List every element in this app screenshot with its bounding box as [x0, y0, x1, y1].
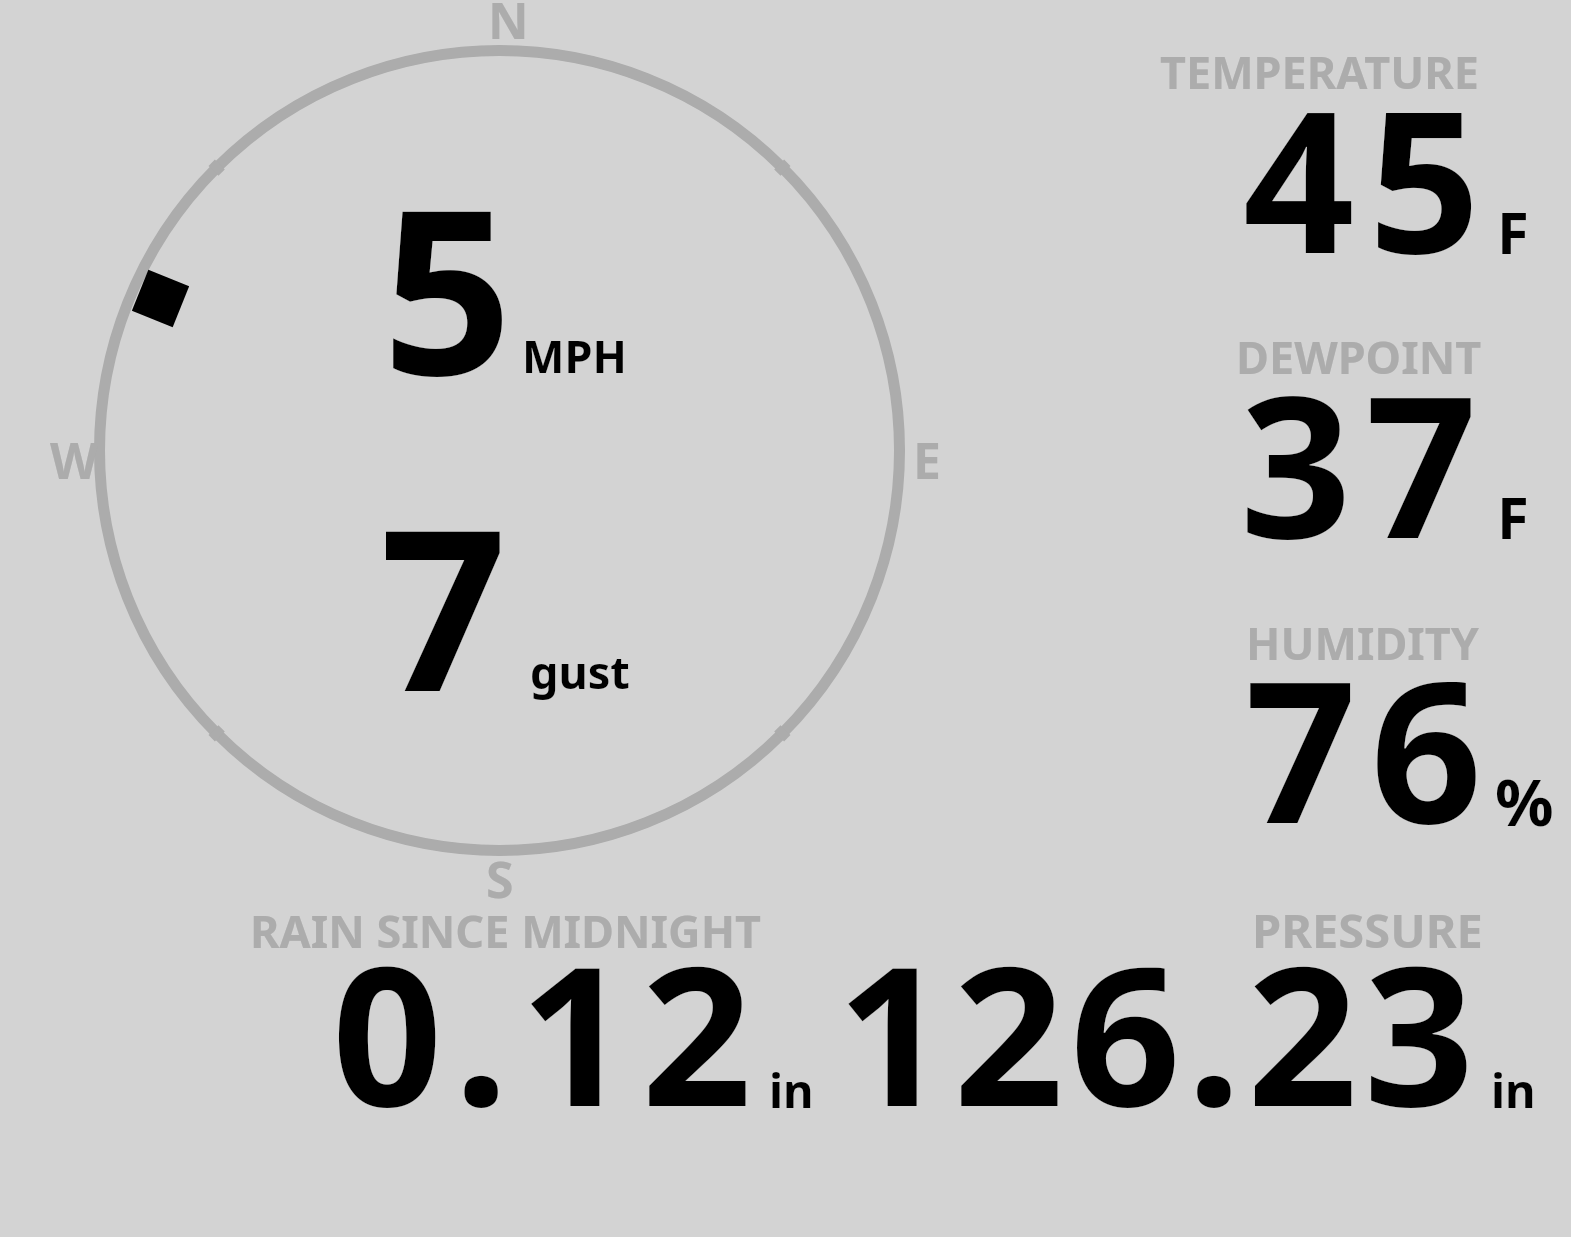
staticText: % — [1495, 757, 1554, 846]
staticText: MPH — [522, 325, 627, 386]
staticText: 0.12 — [332, 900, 764, 1163]
button[interactable]: Humidity 76 percent — [1150, 610, 1560, 840]
staticText: 126.23 — [837, 900, 1481, 1163]
staticText: 76 — [1245, 615, 1497, 881]
button[interactable]: Temperature 45 degrees Fahrenheit — [1150, 40, 1560, 270]
staticText: TEMPERATURE — [1160, 41, 1479, 102]
staticText: PRESSURE — [1252, 898, 1483, 962]
staticText: gust — [530, 641, 630, 702]
staticText: HUMIDITY — [1246, 612, 1479, 673]
staticText: E — [913, 426, 941, 494]
staticText: N — [488, 0, 529, 54]
staticText: RAIN SINCE MIDNIGHT — [250, 900, 762, 961]
staticText: 37 — [1240, 330, 1492, 596]
button[interactable]: Dewpoint 37 degrees Fahrenheit — [1150, 325, 1560, 555]
button[interactable]: Rain since midnight 0.12 inches — [240, 900, 820, 1130]
staticText: 5 — [382, 131, 513, 442]
button[interactable]: Pressure 126.23 inches — [830, 900, 1550, 1130]
staticText: F — [1497, 192, 1529, 271]
staticText: F — [1497, 477, 1529, 556]
staticText: S — [486, 845, 514, 913]
staticText: W — [50, 426, 99, 494]
staticText: 45 — [1243, 45, 1495, 311]
staticText: in — [769, 1058, 814, 1122]
staticText: DEWPOINT — [1236, 326, 1482, 387]
button[interactable]: Wind direction and speed compass, 5 mile… — [94, 45, 906, 857]
staticText: 7 — [380, 454, 507, 756]
staticText: in — [1491, 1058, 1536, 1122]
